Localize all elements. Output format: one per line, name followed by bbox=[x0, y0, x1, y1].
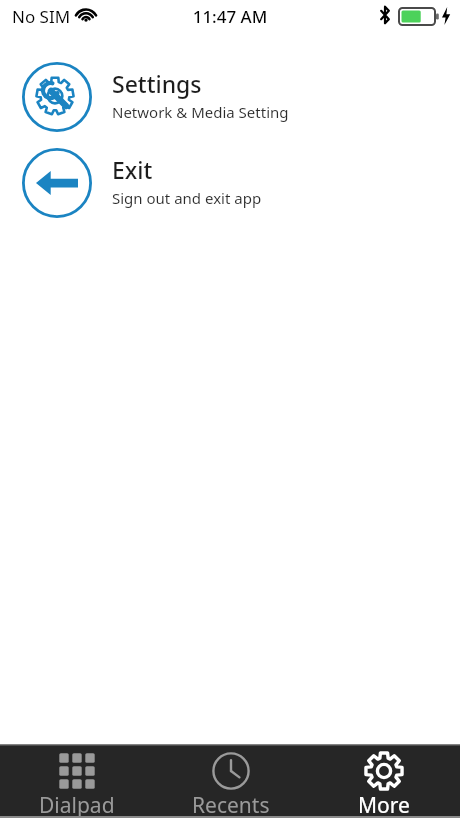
staticText: No SIM bbox=[12, 5, 71, 28]
button[interactable]: Dialpad bbox=[0, 745, 154, 818]
staticText: Sign out and exit app bbox=[112, 188, 262, 208]
staticText: Network & Media Setting bbox=[112, 102, 289, 122]
staticText: Recents bbox=[192, 791, 270, 818]
button[interactable]: More bbox=[307, 745, 460, 818]
staticText: 11:47 AM bbox=[0, 5, 460, 28]
staticText: Dialpad bbox=[39, 791, 115, 818]
button[interactable]: Recents bbox=[154, 745, 307, 818]
staticText: Settings bbox=[112, 68, 202, 99]
staticText: More bbox=[358, 791, 410, 818]
button[interactable]: Settings bbox=[0, 62, 460, 132]
button[interactable]: Exit bbox=[0, 148, 460, 218]
staticText: Exit bbox=[112, 154, 153, 185]
